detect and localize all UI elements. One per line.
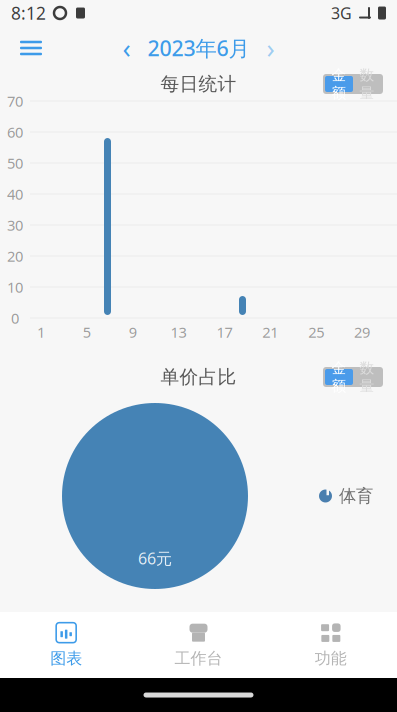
button[interactable]: 数量 bbox=[353, 76, 381, 92]
staticText: 2023年6月 bbox=[147, 34, 249, 62]
button[interactable]: Next month bbox=[258, 34, 282, 62]
staticText: 体育 bbox=[339, 485, 373, 507]
staticText: 60 bbox=[7, 122, 23, 142]
staticText: 金额 bbox=[331, 66, 346, 102]
staticText: 图表 bbox=[50, 649, 82, 668]
button[interactable]: 工作台 bbox=[132, 613, 265, 677]
staticText: 29 bbox=[354, 322, 370, 342]
staticText: 40 bbox=[7, 184, 23, 204]
staticText: 9 bbox=[129, 322, 137, 342]
staticText: 工作台 bbox=[174, 649, 222, 668]
button[interactable]: 数量 bbox=[353, 369, 381, 385]
staticText: 每日统计 bbox=[160, 72, 236, 95]
staticText: 1 bbox=[37, 322, 45, 342]
staticText: 30 bbox=[7, 215, 23, 235]
staticText: 3G bbox=[331, 2, 352, 24]
staticText: 66元 bbox=[138, 548, 172, 569]
staticText: 25 bbox=[308, 322, 324, 342]
staticText: 数量 bbox=[359, 66, 374, 102]
staticText: 8:12 bbox=[11, 1, 46, 24]
button[interactable]: Menu bbox=[11, 32, 51, 64]
staticText: 50 bbox=[7, 153, 23, 173]
staticText: 20 bbox=[7, 246, 23, 266]
staticText: 5 bbox=[83, 322, 91, 342]
staticText: ‹ bbox=[122, 30, 130, 66]
staticText: 金额 bbox=[331, 359, 346, 395]
staticText: 17 bbox=[216, 322, 232, 342]
button[interactable]: 金额 bbox=[325, 76, 353, 92]
staticText: › bbox=[266, 30, 274, 66]
staticText: 10 bbox=[7, 277, 23, 297]
staticText: 0 bbox=[11, 308, 19, 328]
staticText: 13 bbox=[171, 322, 187, 342]
staticText: 数量 bbox=[359, 359, 374, 395]
staticText: 功能 bbox=[315, 649, 347, 668]
button[interactable]: Previous month bbox=[114, 34, 138, 62]
staticText: 单价占比 bbox=[160, 365, 236, 388]
staticText: 70 bbox=[7, 91, 23, 111]
button[interactable]: 图表 bbox=[0, 613, 132, 677]
staticText: 21 bbox=[262, 322, 278, 342]
button[interactable]: 金额 bbox=[325, 369, 353, 385]
button[interactable]: 功能 bbox=[265, 613, 397, 677]
